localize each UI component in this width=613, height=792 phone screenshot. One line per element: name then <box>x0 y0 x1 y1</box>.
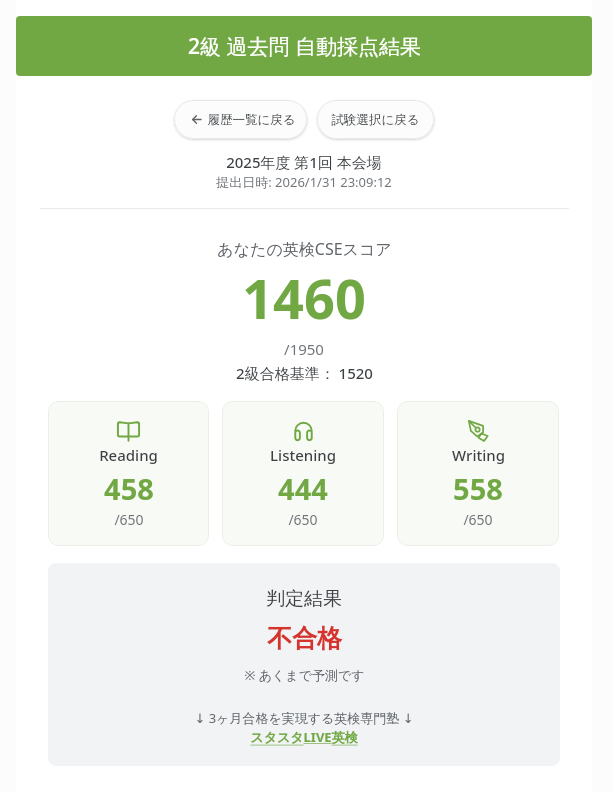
staticText: Reading <box>99 445 158 465</box>
button[interactable]: 2級 過去問 自動採点結果 <box>16 16 592 76</box>
staticText: ↓ 3ヶ月合格を実現する英検専門塾 ↓ <box>194 709 414 727</box>
other: Reading <box>117 419 140 442</box>
staticText: 試験選択に戻る <box>331 112 420 128</box>
staticText: 履歴一覧に戻る <box>207 112 296 128</box>
staticText: 2025年度 第1回 本会場 <box>226 152 382 172</box>
staticText: 2級 過去問 自動採点結果 <box>188 32 421 61</box>
staticText: 不合格 <box>267 623 342 654</box>
staticText: 444 <box>278 469 328 508</box>
other: Listening <box>292 419 315 442</box>
button[interactable]: Listening <box>222 401 384 546</box>
staticText: Writing <box>452 445 505 465</box>
staticText: /650 <box>463 510 493 529</box>
staticText: ※ あくまで予測です <box>244 666 365 684</box>
other: Writing <box>467 419 490 442</box>
button[interactable]: Writing <box>397 401 559 546</box>
staticText: 1460 <box>242 261 366 335</box>
staticText: 558 <box>453 469 503 508</box>
staticText: 提出日時: 2026/1/31 23:09:12 <box>216 173 392 191</box>
staticText: 458 <box>104 469 154 508</box>
staticText: /650 <box>288 510 318 529</box>
button[interactable]: 戻る <box>174 100 307 139</box>
button[interactable]: Reading <box>48 401 209 546</box>
staticText: /650 <box>114 510 144 529</box>
staticText: 2級合格基準： 1520 <box>236 363 373 383</box>
staticText: 判定結果 <box>266 587 342 611</box>
other: 戻る <box>192 115 201 124</box>
button[interactable]: スタスタLIVE英検 <box>250 728 358 746</box>
button[interactable]: 試験選択に戻る <box>317 100 434 139</box>
staticText: Listening <box>270 445 336 465</box>
staticText: /1950 <box>284 339 324 359</box>
staticText: あなたの英検CSEスコア <box>217 238 392 260</box>
